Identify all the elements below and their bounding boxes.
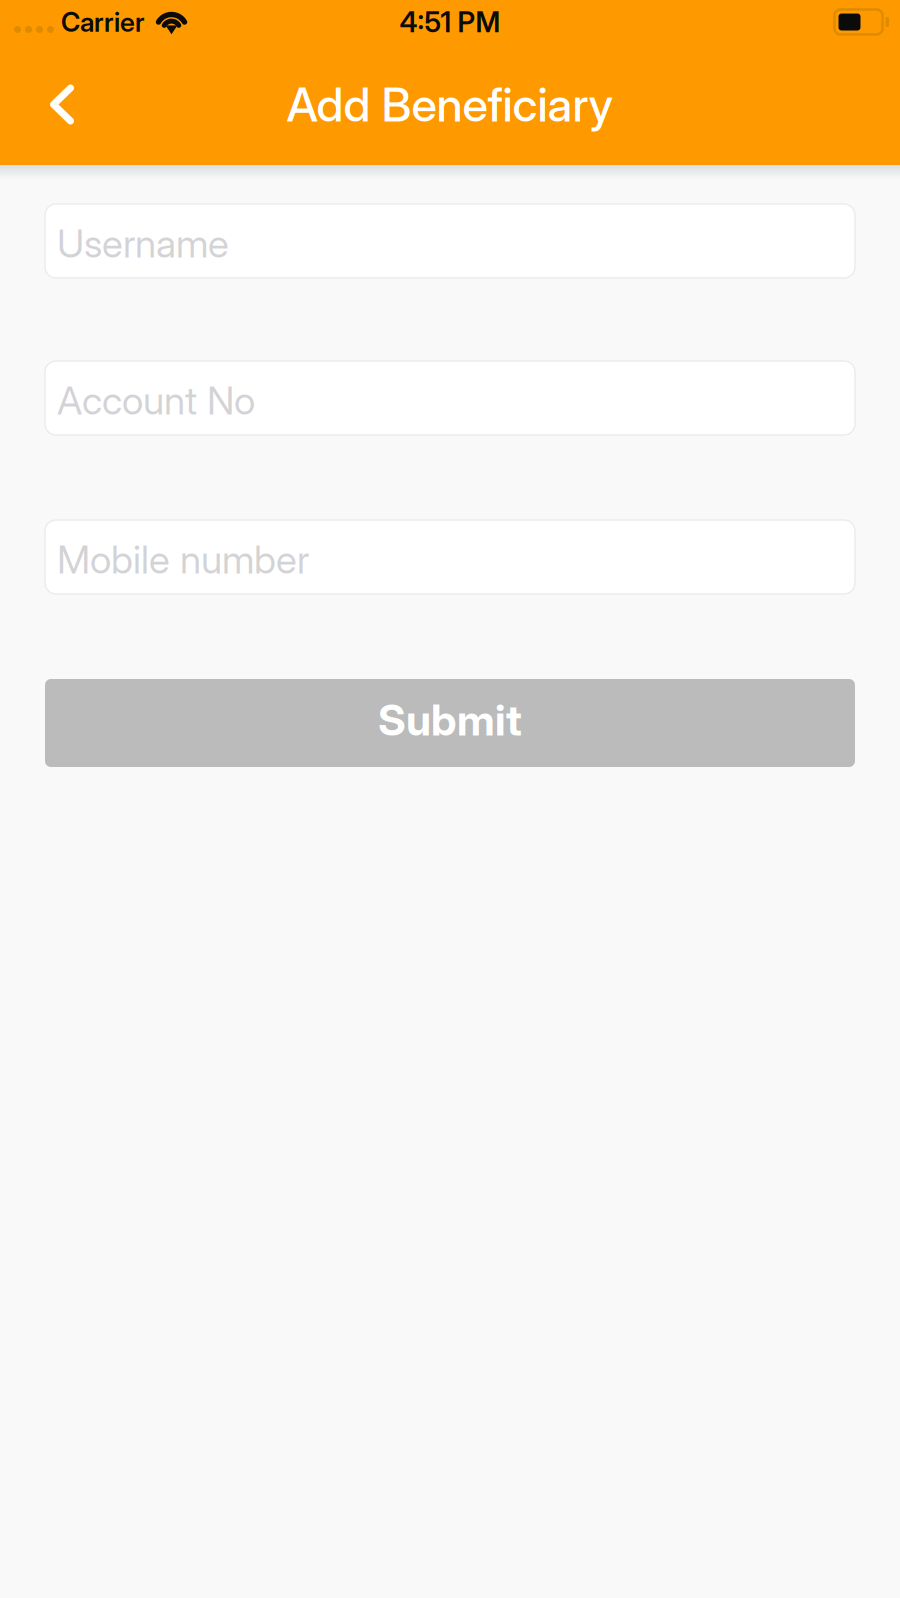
- staticText: Submit: [378, 694, 522, 746]
- button[interactable]: Mobile number: [45, 520, 855, 594]
- button[interactable]: Account No: [45, 361, 855, 435]
- staticText: 4:51 PM: [399, 5, 500, 39]
- button[interactable]: Username: [45, 204, 855, 278]
- staticText: Carrier: [61, 6, 144, 38]
- staticText: Add Beneficiary: [286, 76, 613, 133]
- staticText: Account No: [57, 377, 255, 424]
- button[interactable]: Back: [0, 66, 104, 142]
- staticText: Mobile number: [57, 536, 309, 583]
- staticText: Username: [57, 220, 229, 267]
- button[interactable]: Submit: [45, 679, 855, 767]
